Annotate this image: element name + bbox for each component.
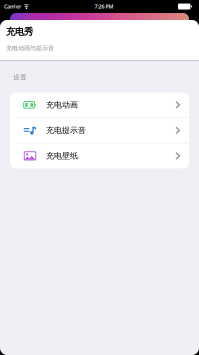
staticText: 设置 [13, 73, 27, 81]
staticText: Carrier [4, 3, 21, 10]
staticText: 充电动画 [46, 100, 78, 110]
staticText: 充电秀 [6, 26, 33, 37]
staticText: 充电动画与提示音 [6, 44, 54, 52]
staticText: 7:26 PM [94, 3, 113, 10]
button[interactable]: 充电壁纸 [10, 143, 189, 168]
staticText: 充电提示音 [46, 125, 86, 135]
staticText: 充电壁纸 [46, 151, 78, 161]
button[interactable]: 充电提示音 [10, 118, 189, 143]
button[interactable]: 充电动画 [10, 92, 189, 117]
